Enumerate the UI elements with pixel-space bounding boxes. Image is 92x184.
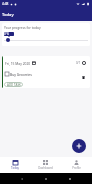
button[interactable]: Dashboard — [30, 157, 61, 173]
staticText: 4:48 — [2, 2, 9, 6]
button[interactable]: Timer — [82, 61, 86, 65]
staticText: Today — [2, 12, 14, 18]
staticText: 0 % done — [4, 32, 14, 36]
staticText: Fri, 15 May 2020 — [5, 61, 31, 65]
button[interactable]: Add task — [72, 139, 86, 153]
staticText: Profile — [72, 166, 81, 170]
staticText: Today — [11, 166, 19, 170]
button[interactable]: Toggle task — [5, 72, 9, 76]
button[interactable]: Your progress for today — [2, 23, 90, 46]
button[interactable]: Delete — [81, 75, 86, 80]
staticText: Your progress for today — [4, 25, 41, 29]
button[interactable]: ADD TASK — [4, 82, 23, 87]
button[interactable]: Profile — [61, 157, 92, 173]
button[interactable]: Today — [0, 157, 30, 173]
staticText: 0/1 — [76, 61, 81, 65]
staticText: Dashboard — [38, 166, 53, 170]
staticText: Buy Groceries — [10, 72, 32, 76]
staticText: ADD TASK — [7, 83, 21, 87]
button[interactable]: Calendar — [32, 61, 36, 65]
